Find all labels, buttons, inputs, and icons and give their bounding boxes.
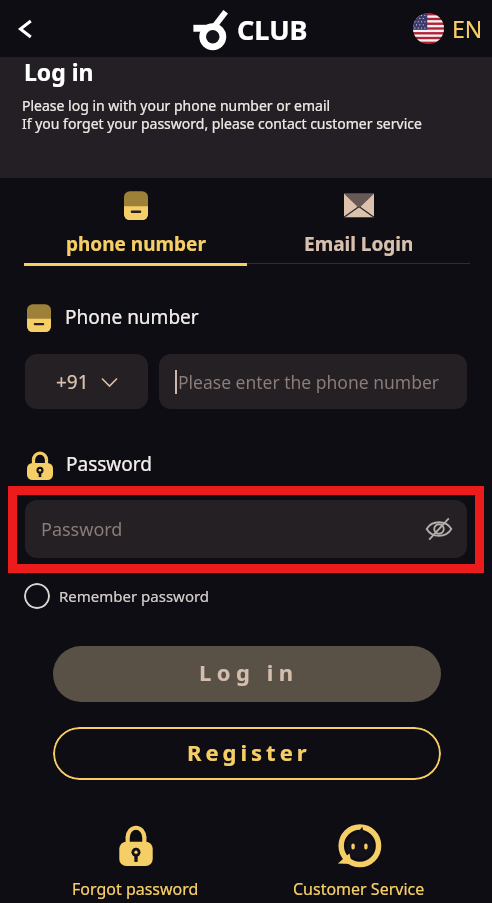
staticText: Register (187, 737, 311, 767)
staticText: CLUB (237, 11, 308, 48)
staticText: Password (66, 451, 152, 477)
staticText: Please enter the phone number (178, 370, 440, 394)
button[interactable]: Register (53, 727, 441, 780)
staticText: Password (41, 517, 123, 542)
button[interactable]: Customer Service (247, 822, 470, 900)
staticText: Email Login (304, 231, 414, 257)
staticText: Customer Service (293, 878, 425, 900)
staticText: Please log in with your phone number or … (22, 96, 331, 115)
staticText: +91 (56, 369, 89, 395)
staticText: Phone number (65, 304, 199, 330)
button[interactable]: Please enter the phone number (159, 354, 467, 409)
button[interactable]: Forgot password (24, 822, 247, 900)
button[interactable]: Remember password (24, 583, 210, 609)
button[interactable]: Password (25, 500, 467, 558)
staticText: Log in (24, 56, 94, 87)
staticText: phone number (66, 231, 206, 257)
button[interactable]: phone number (24, 190, 247, 266)
button[interactable]: Log in (53, 646, 441, 702)
staticText: EN (452, 13, 483, 44)
staticText: Log in (199, 657, 299, 687)
button[interactable]: Email Login (247, 190, 470, 264)
button[interactable]: EN (413, 13, 483, 44)
staticText: Remember password (59, 586, 210, 606)
button[interactable]: Back (6, 9, 46, 49)
button[interactable]: +91 (25, 354, 148, 409)
staticText: If you forget your password, please cont… (22, 114, 422, 133)
staticText: Forgot password (72, 878, 199, 900)
button[interactable]: Show password (425, 515, 453, 543)
